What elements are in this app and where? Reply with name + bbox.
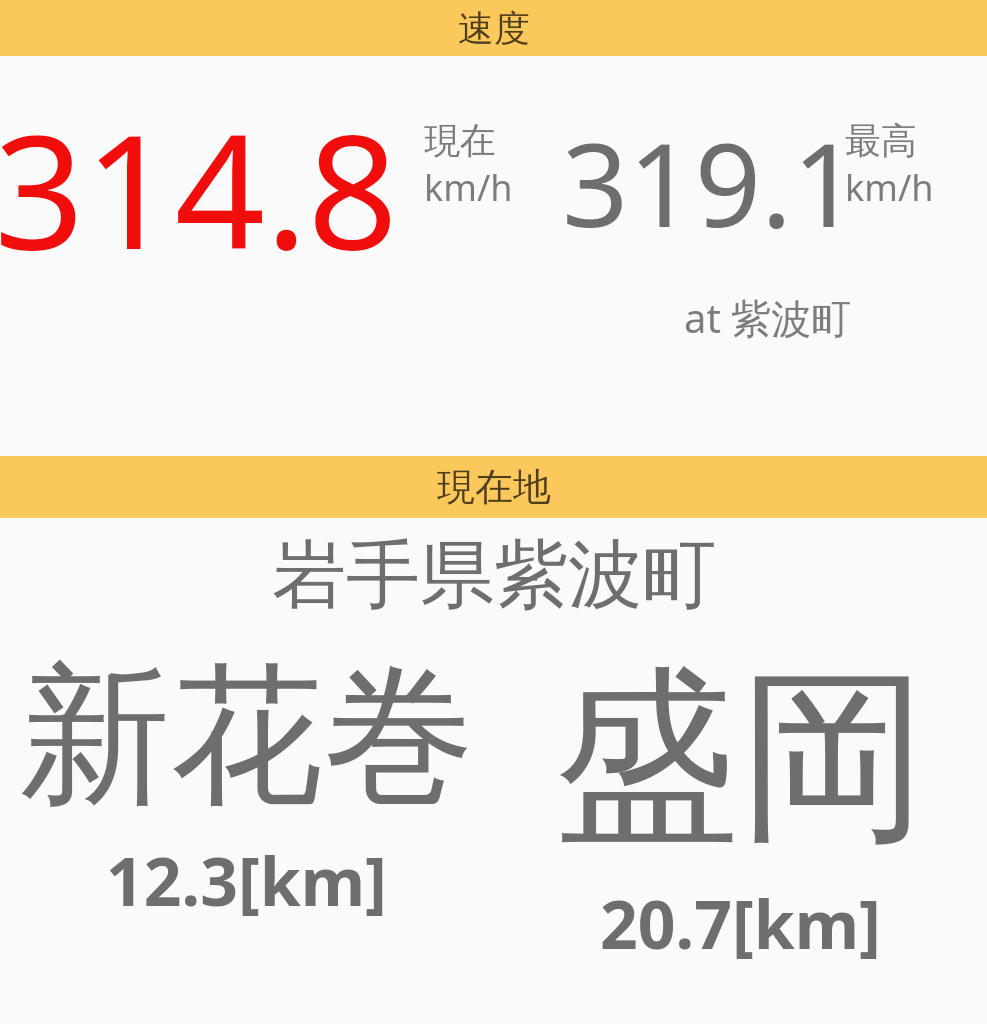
staticText: 速度: [458, 6, 530, 51]
staticText: at 紫波町: [684, 290, 852, 345]
staticText: 最高: [845, 118, 917, 163]
button[interactable]: 現在地: [0, 456, 987, 518]
staticText: 12.3[km]: [106, 835, 387, 925]
staticText: km/h: [424, 163, 513, 212]
staticText: 20.7[km]: [600, 878, 881, 968]
button[interactable]: 新花巻: [0, 642, 493, 925]
staticText: 314.8: [0, 80, 398, 295]
staticText: 現在: [424, 118, 496, 163]
button[interactable]: 盛岡: [493, 642, 987, 968]
button[interactable]: 314.8: [0, 56, 987, 456]
staticText: 盛岡: [554, 642, 926, 876]
button[interactable]: 速度: [0, 0, 987, 56]
staticText: km/h: [845, 163, 934, 212]
staticText: 岩手県紫波町: [272, 529, 716, 622]
staticText: 現在地: [437, 463, 551, 511]
button[interactable]: 岩手県紫波町: [0, 518, 987, 628]
staticText: 新花巻: [19, 642, 475, 833]
staticText: 319.1: [562, 103, 859, 261]
